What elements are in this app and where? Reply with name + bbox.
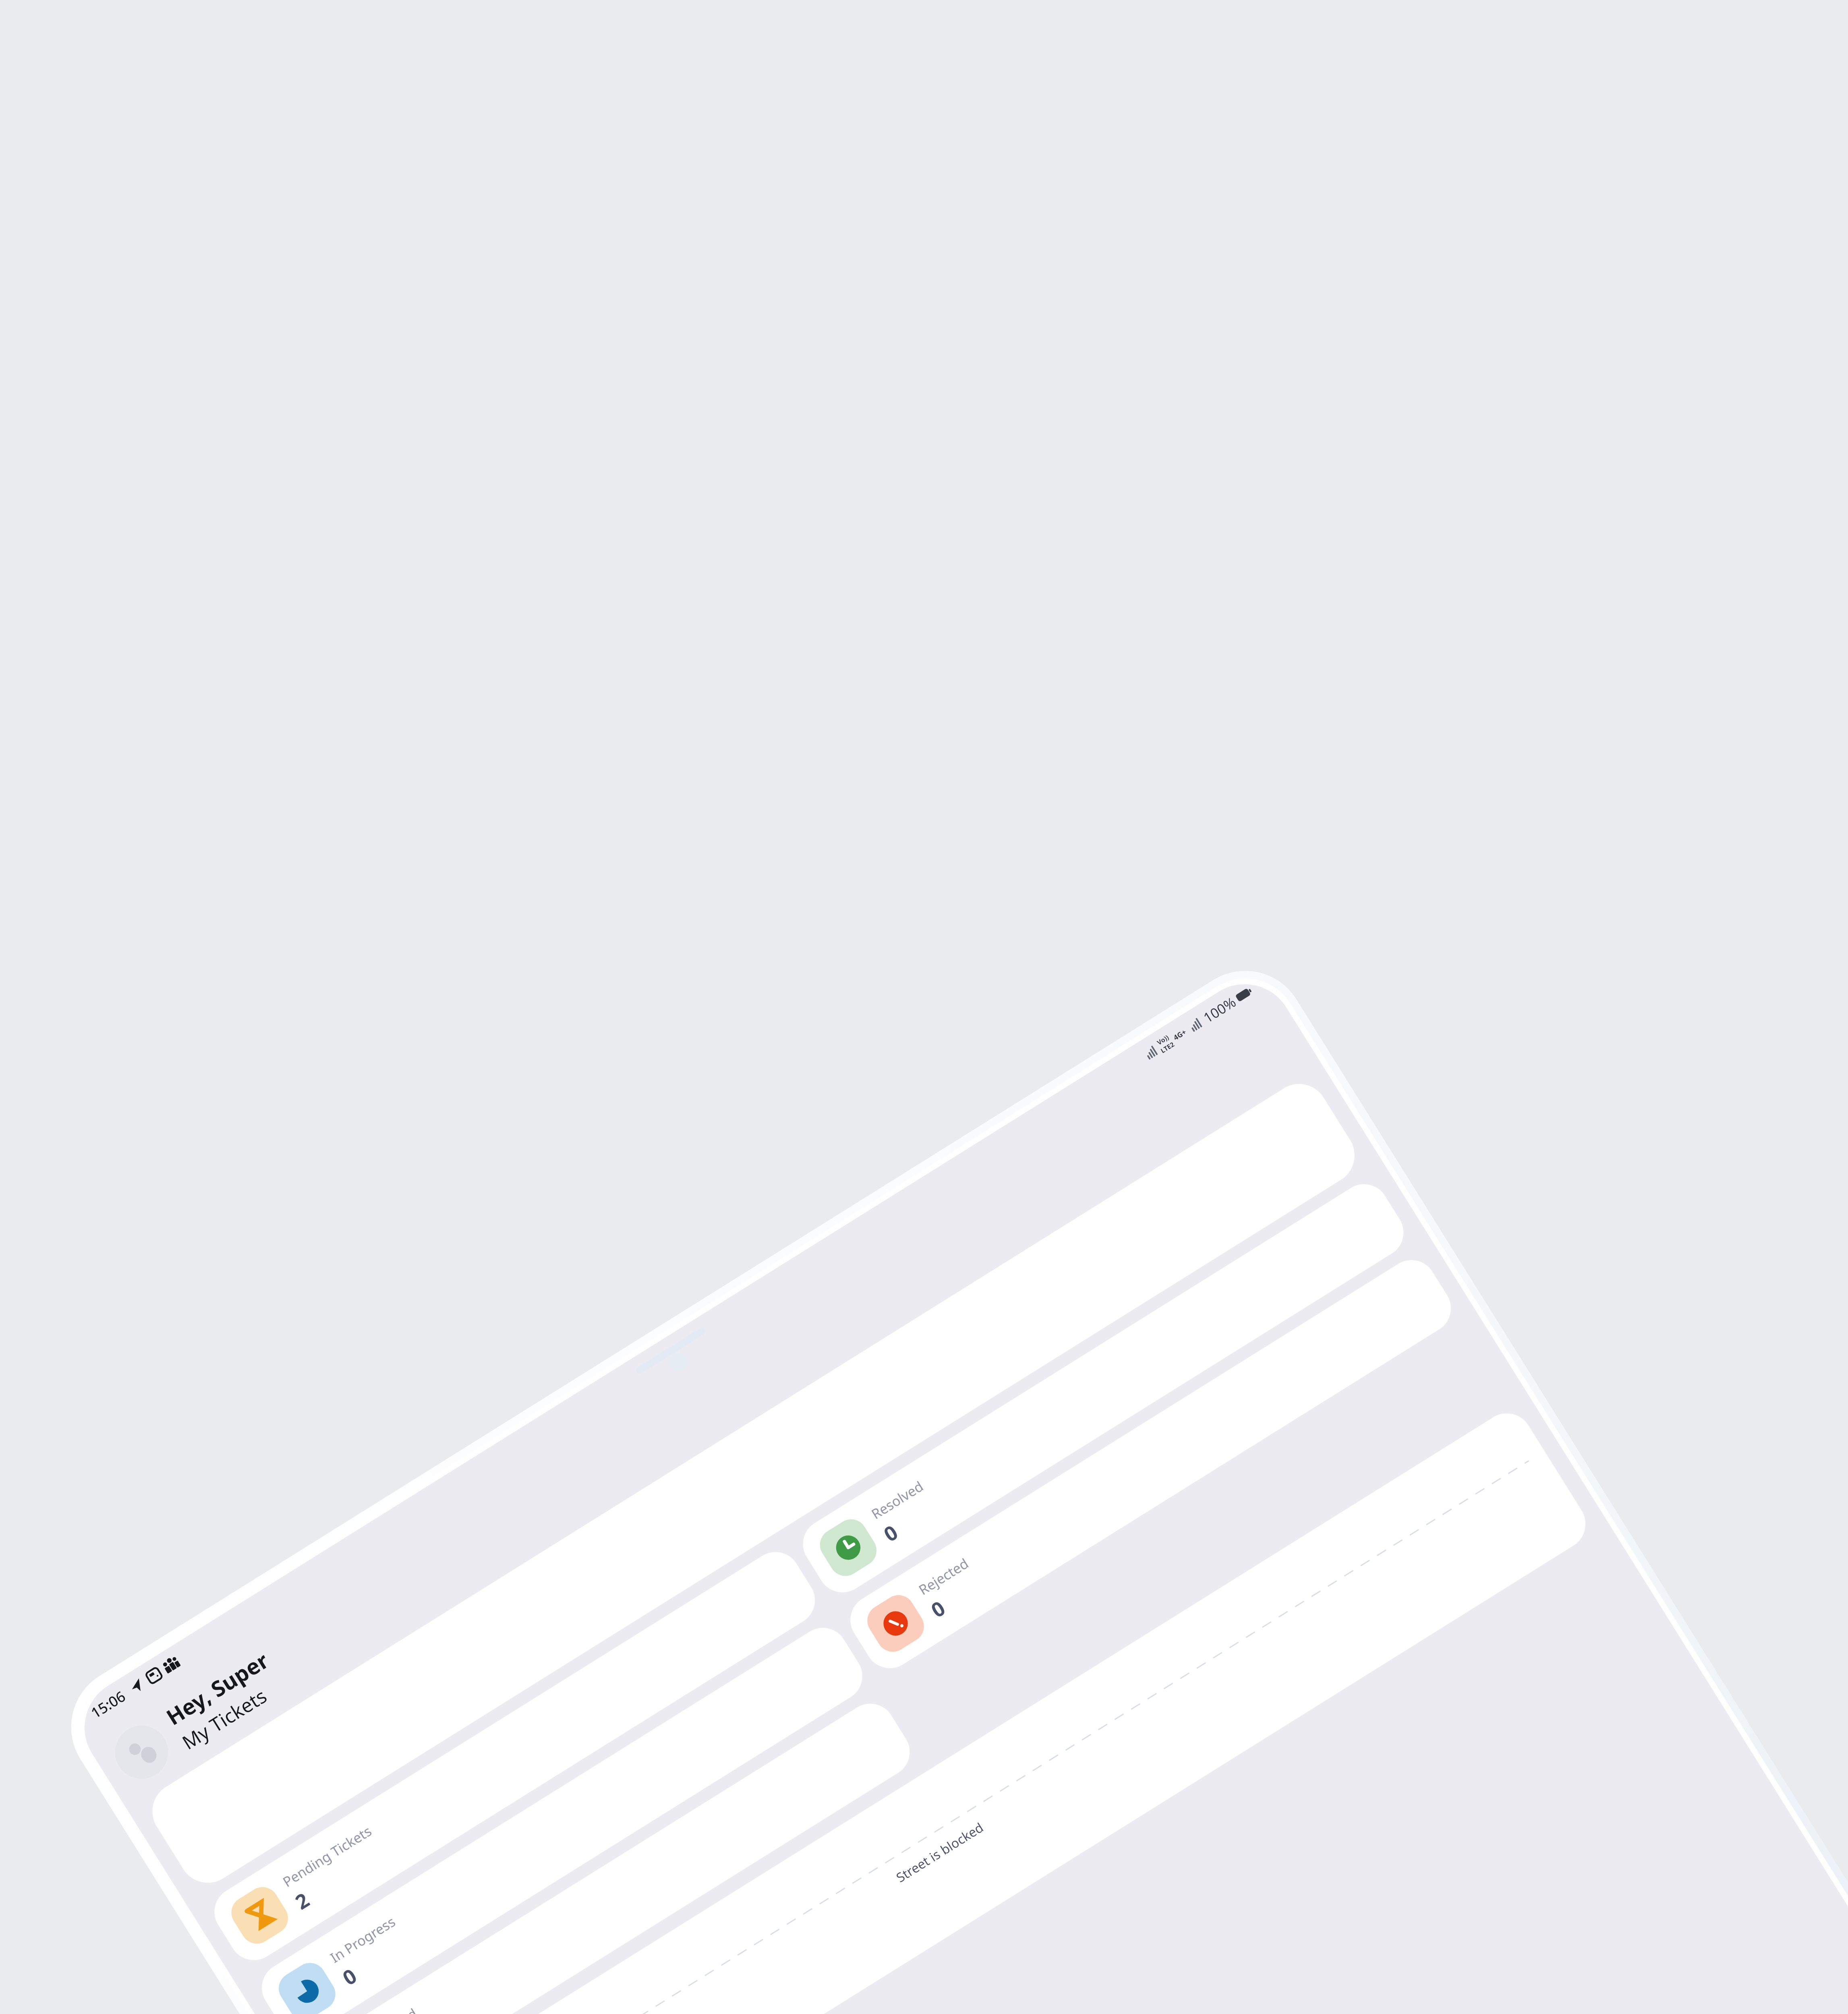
staticText: Hey, Super	[160, 1645, 274, 1732]
button[interactable]: Profile	[105, 1716, 178, 1789]
staticText: 2	[290, 1886, 314, 1915]
staticText: LTE2	[1159, 1040, 1176, 1055]
staticText: 15:06	[87, 1686, 129, 1723]
staticText: Closed	[374, 2004, 421, 2014]
staticText: Street is blocked	[893, 1818, 987, 1886]
staticText: 0	[926, 1594, 950, 1624]
button[interactable]: Road blocked	[348, 1404, 1595, 2014]
staticText: My Tickets	[177, 1683, 272, 1755]
button[interactable]: Pending Tickets	[205, 1543, 824, 1970]
button[interactable]: Rejected	[841, 1251, 1460, 1678]
staticText: 100%	[1200, 993, 1239, 1027]
staticText: Rejected	[915, 1554, 972, 1599]
button[interactable]	[141, 1073, 1366, 1894]
staticText: In Progress	[327, 1912, 399, 1967]
button[interactable]: Closed	[300, 1694, 919, 2014]
staticText: 4G+	[1171, 1027, 1188, 1043]
button[interactable]: Resolved	[794, 1175, 1413, 1602]
staticText: Resolved	[868, 1477, 927, 1523]
staticText: Pending Tickets	[279, 1821, 375, 1891]
staticText: Vo))	[1155, 1033, 1171, 1047]
staticText: 0	[878, 1518, 903, 1548]
staticText: 0	[337, 1962, 362, 1991]
button[interactable]: In Progress	[252, 1618, 872, 2014]
